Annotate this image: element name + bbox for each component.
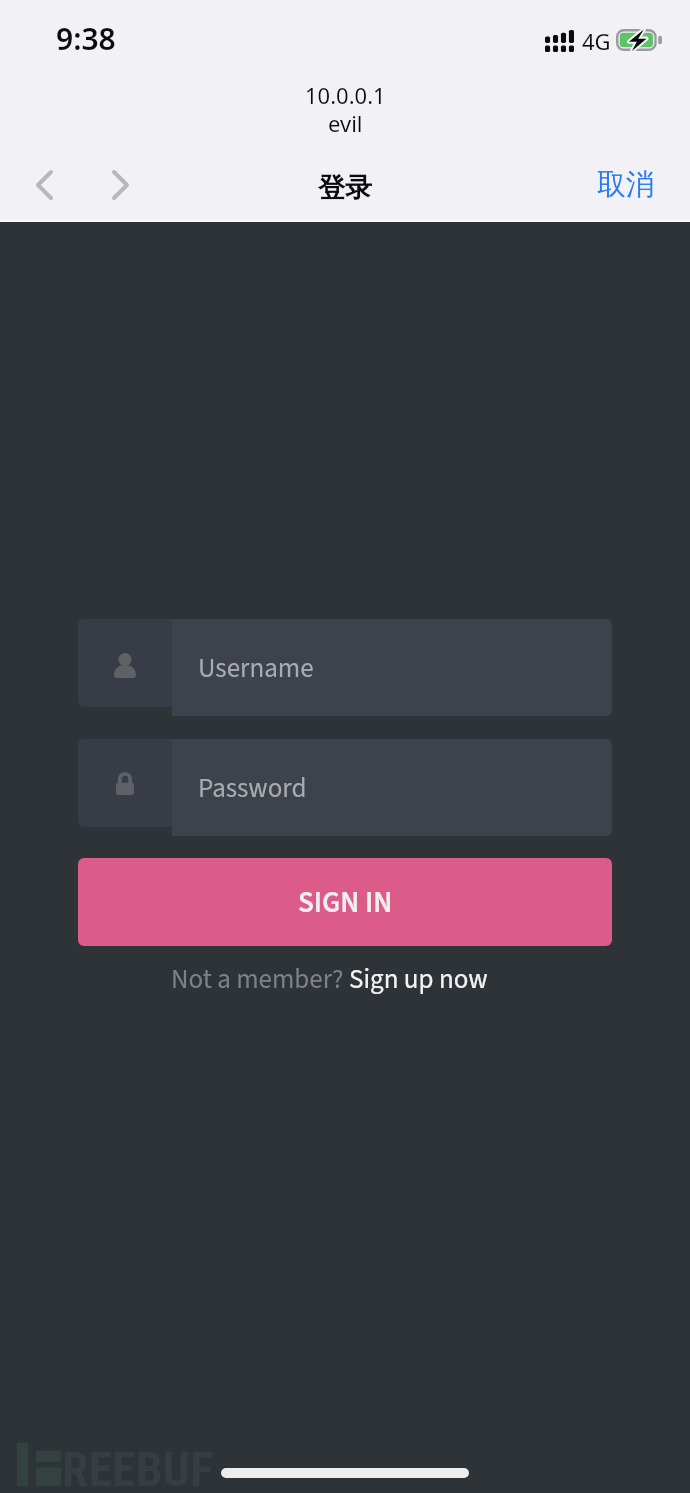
button[interactable]: Password — [172, 739, 612, 836]
button[interactable]: Back — [14, 155, 74, 215]
button[interactable]: Forward — [90, 155, 150, 215]
staticText: REEBUF — [62, 1441, 213, 1493]
staticText: 9:38 — [56, 18, 116, 59]
staticText: evil — [328, 108, 363, 138]
button[interactable]: 取消 — [577, 158, 690, 211]
staticText: SIGN IN — [298, 882, 393, 923]
staticText: 10.0.0.1 — [305, 80, 386, 110]
button[interactable]: SIGN IN — [78, 858, 612, 946]
button[interactable]: Username — [172, 619, 612, 716]
button[interactable]: Sign up now — [349, 960, 488, 998]
staticText: Password — [198, 769, 307, 807]
staticText: 4G — [582, 26, 611, 56]
staticText: 登录 — [318, 171, 372, 205]
staticText: Not a member? — [171, 960, 349, 998]
staticText: 取消 — [597, 166, 655, 203]
staticText: Username — [198, 649, 314, 687]
